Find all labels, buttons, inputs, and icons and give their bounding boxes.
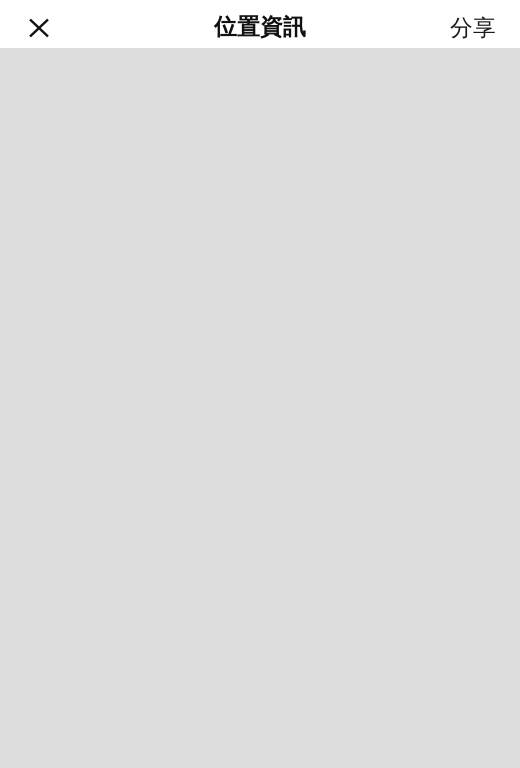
staticText: 位置資訊 <box>214 13 306 41</box>
button[interactable]: 分享 <box>436 1 504 47</box>
button[interactable]: Close <box>16 1 60 46</box>
staticText: 分享 <box>450 14 496 42</box>
